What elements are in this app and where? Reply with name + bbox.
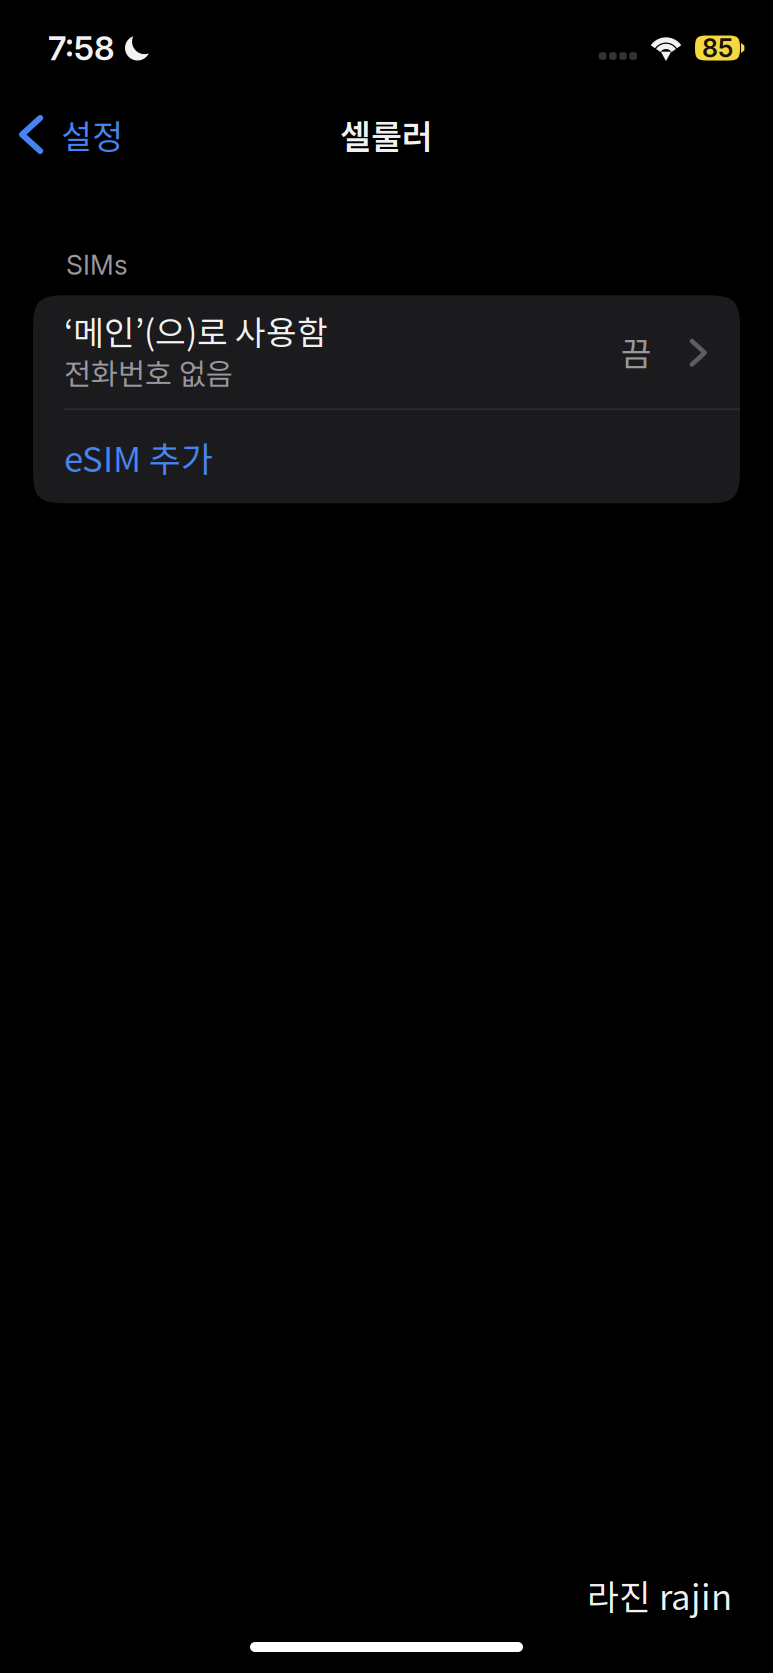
staticText: 설정 — [61, 110, 123, 159]
staticText: eSIM 추가 — [64, 432, 213, 482]
button[interactable]: 설정 — [0, 96, 141, 173]
button[interactable]: eSIM 추가 — [33, 410, 740, 503]
staticText: 85 — [702, 33, 733, 63]
staticText: 끔 — [621, 328, 652, 376]
button[interactable]: ‘메인’(으)로 사용함 — [33, 295, 740, 408]
staticText: 7:58 — [48, 28, 115, 68]
staticText: SIMs — [66, 249, 128, 281]
staticText: 라진 rajin — [587, 1570, 732, 1620]
staticText: 셀룰러 — [340, 110, 433, 159]
staticText: ‘메인’(으)로 사용함 — [64, 306, 328, 355]
staticText: 전화번호 없음 — [64, 351, 233, 393]
